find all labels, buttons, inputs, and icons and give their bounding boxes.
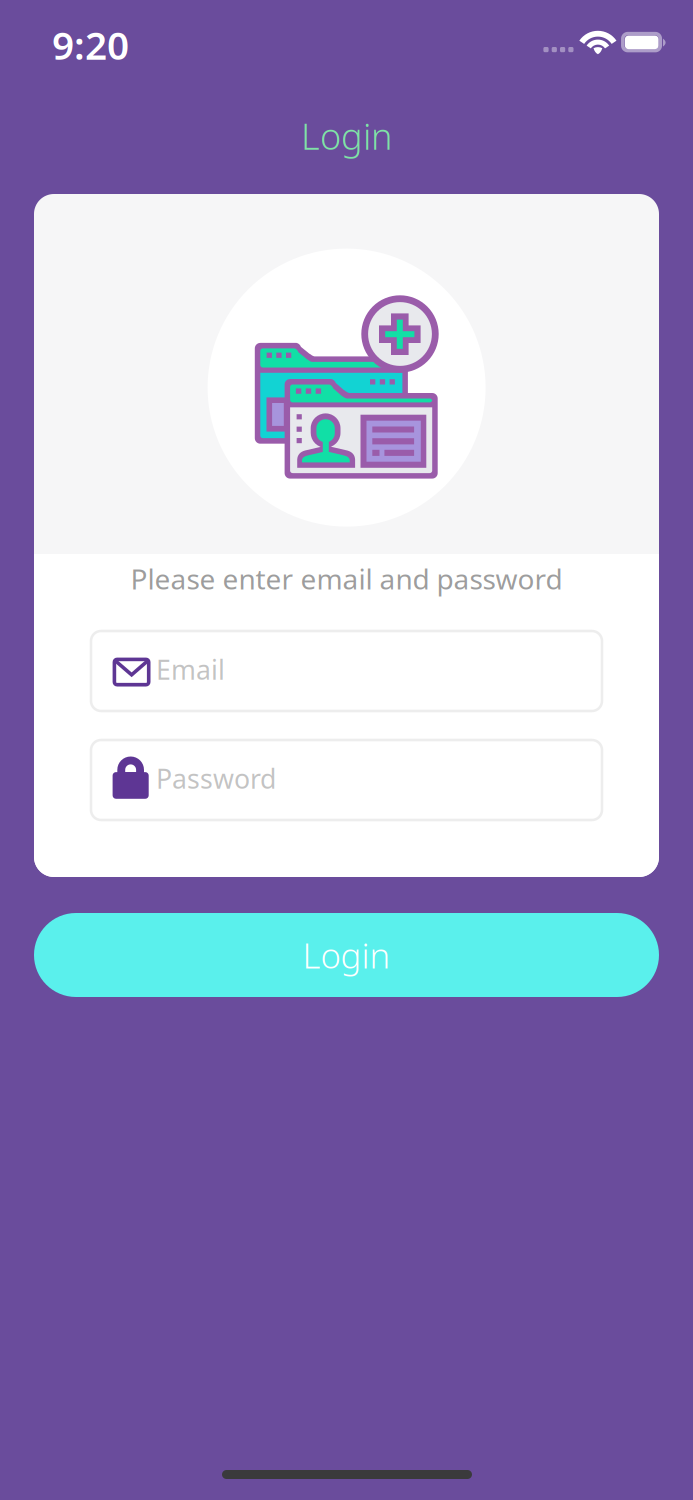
button[interactable]: Password: [91, 740, 602, 820]
staticText: Email: [156, 652, 225, 687]
button[interactable]: Login: [34, 913, 659, 997]
button[interactable]: Email: [91, 631, 602, 711]
staticText: 9:20: [52, 19, 129, 70]
staticText: Password: [156, 761, 276, 796]
staticText: Please enter email and password: [130, 560, 562, 597]
staticText: Login: [302, 932, 390, 978]
staticText: Login: [301, 112, 392, 160]
